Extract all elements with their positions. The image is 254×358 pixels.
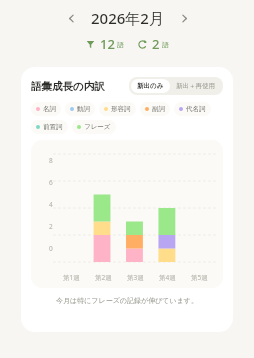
button[interactable]: 2	[138, 35, 169, 53]
staticText: 名詞	[43, 105, 56, 113]
staticText: 今月は特にフレーズの記録が伸びています。	[31, 296, 223, 305]
staticText: 2	[152, 35, 160, 53]
staticText: 副詞	[152, 105, 165, 113]
staticText: フレーズ	[84, 123, 111, 131]
button[interactable]: 12	[86, 35, 124, 53]
staticText: 第1週	[63, 273, 80, 282]
button[interactable]: 形容詞	[99, 102, 136, 116]
staticText: 第2週	[95, 273, 112, 282]
staticText: 語彙成長の内訳	[31, 80, 105, 93]
button[interactable]: 前置詞	[31, 120, 68, 134]
button[interactable]: 新出のみ	[131, 79, 170, 93]
staticText: 4	[49, 200, 53, 209]
staticText: 2026年2月	[91, 8, 164, 28]
staticText: 2	[49, 222, 53, 231]
button[interactable]: 新出＋再使用	[170, 79, 221, 93]
staticText: 0	[49, 244, 53, 253]
staticText: 12	[100, 35, 115, 53]
staticText: 代名詞	[186, 105, 206, 113]
staticText: 語	[117, 40, 124, 49]
button[interactable]: フレーズ	[72, 120, 116, 134]
button[interactable]: 代名詞	[174, 102, 211, 116]
button[interactable]: Previous month	[61, 8, 81, 28]
staticText: 第5週	[191, 273, 208, 282]
staticText: 動詞	[77, 105, 90, 113]
button[interactable]: 動詞	[65, 102, 95, 116]
staticText: 第4週	[159, 273, 176, 282]
staticText: 語	[162, 40, 169, 49]
staticText: 新出のみ	[137, 82, 164, 90]
button[interactable]: 名詞	[31, 102, 61, 116]
button[interactable]: Next month	[174, 8, 194, 28]
staticText: 第3週	[127, 273, 144, 282]
staticText: 6	[49, 178, 53, 187]
staticText: 新出＋再使用	[176, 82, 215, 90]
button[interactable]: 副詞	[140, 102, 170, 116]
staticText: 形容詞	[111, 105, 131, 113]
staticText: 8	[49, 156, 53, 165]
staticText: 前置詞	[43, 123, 63, 131]
